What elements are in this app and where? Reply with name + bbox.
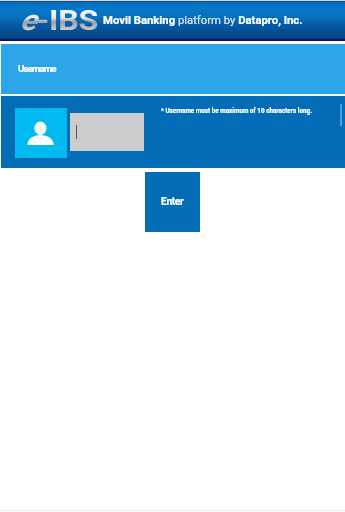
staticText: * Username must be maximum of 10 charact… [161, 107, 313, 114]
staticText: Movil Banking platform by Datapro, Inc. [103, 14, 303, 27]
button[interactable] [70, 113, 144, 151]
staticText: Username [18, 63, 56, 74]
staticText: Enter [161, 196, 184, 208]
button[interactable]: Enter [145, 172, 200, 232]
staticText: e-IBS [20, 3, 98, 37]
button[interactable]: User [15, 108, 67, 158]
